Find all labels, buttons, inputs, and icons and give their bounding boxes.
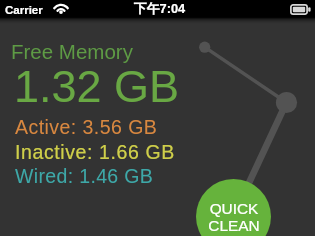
staticText: Free Memory [11, 40, 133, 63]
staticText: Active: 3.56 GB [15, 116, 158, 138]
staticText: 1.32 GB [14, 61, 180, 111]
staticText: 下午7:04 [134, 1, 186, 17]
staticText: QUICK CLEAN [208, 200, 260, 234]
staticText: Inactive: 1.66 GB [15, 141, 175, 163]
staticText: Wired: 1.46 GB [15, 165, 154, 187]
staticText: Carrier [5, 4, 43, 17]
button[interactable]: QUICK CLEAN [196, 179, 271, 236]
